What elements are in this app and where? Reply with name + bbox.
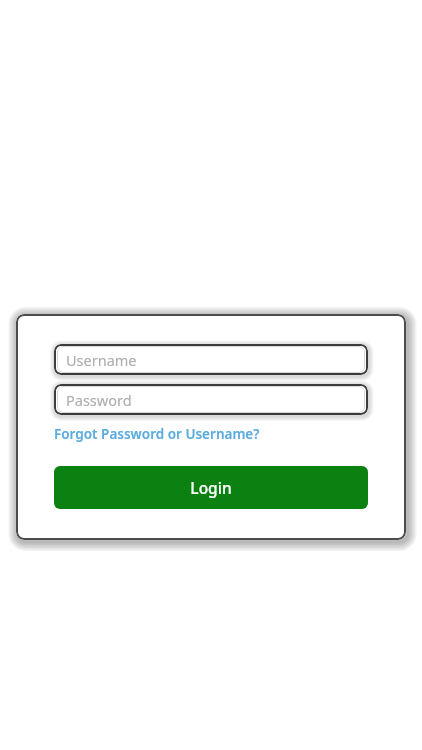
button[interactable]: Login xyxy=(54,466,368,509)
staticText: Password xyxy=(66,390,132,410)
button[interactable]: Username xyxy=(54,344,368,375)
button[interactable]: Password xyxy=(54,384,368,415)
staticText: Forgot Password or Username? xyxy=(54,425,260,443)
staticText: Username xyxy=(66,350,137,370)
staticText: Login xyxy=(190,477,232,498)
button[interactable]: Forgot Password or Username? xyxy=(54,425,260,443)
